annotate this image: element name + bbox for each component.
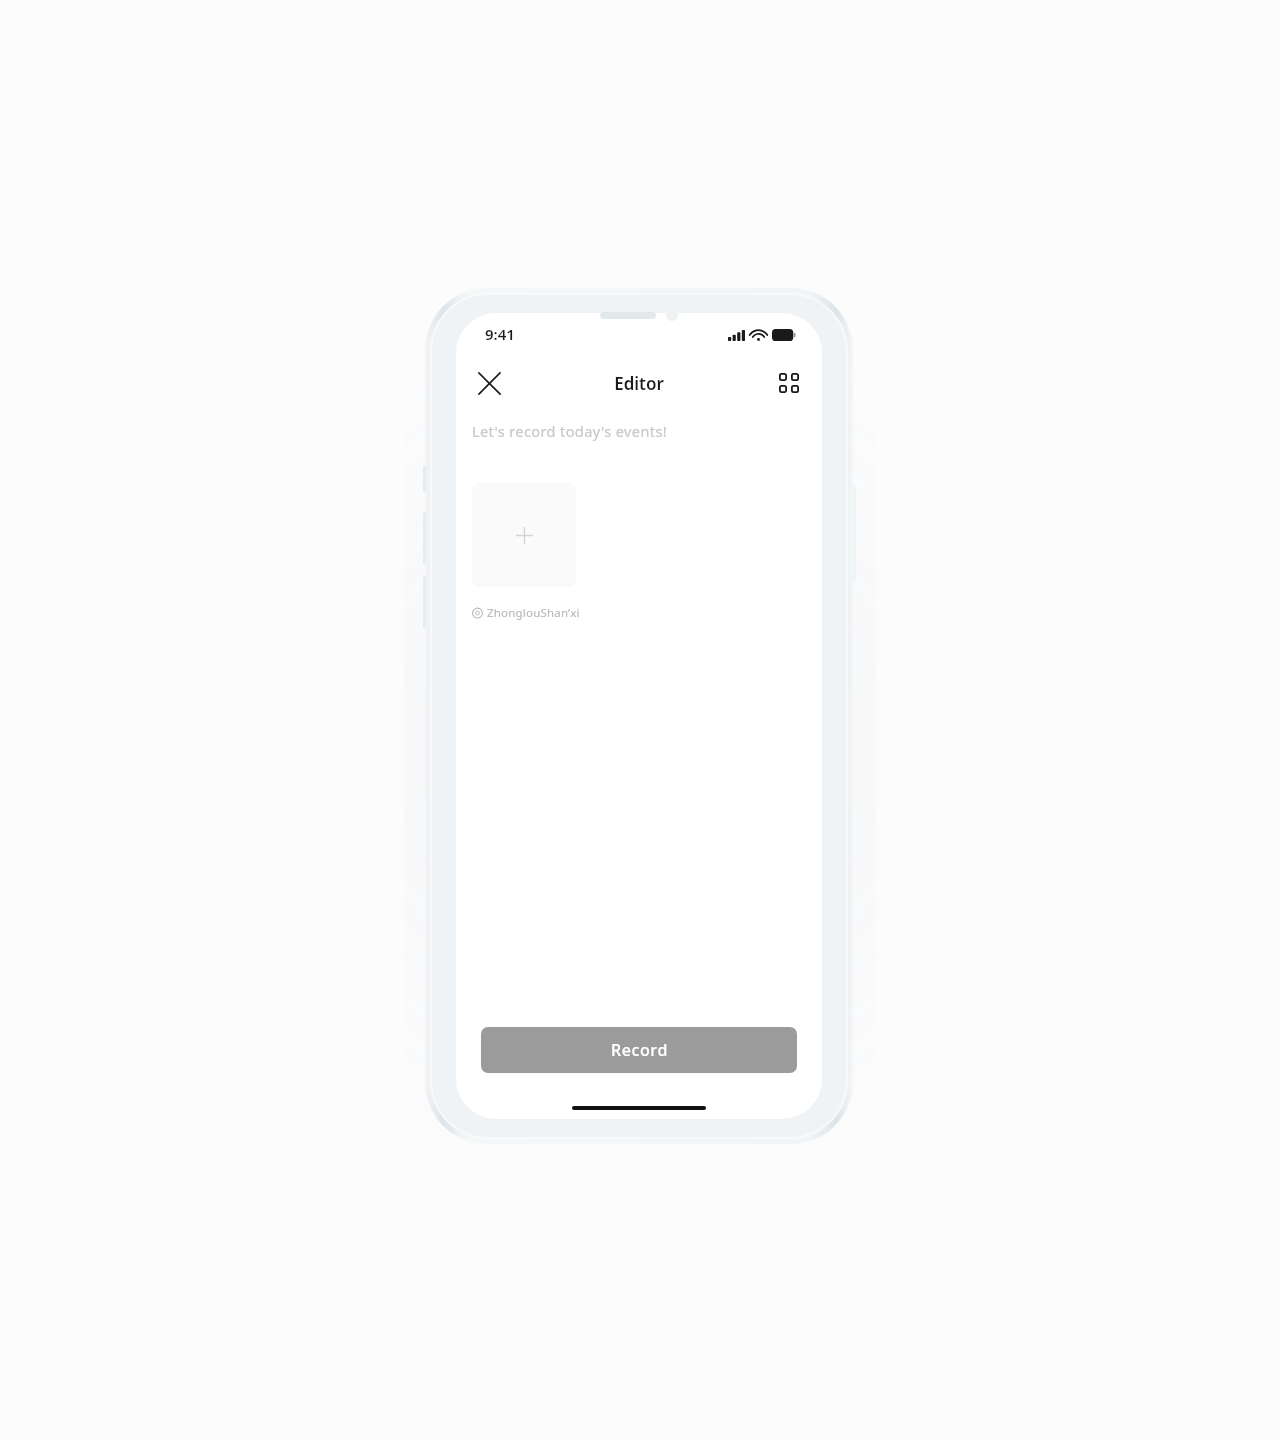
button[interactable]: Record: [481, 1027, 797, 1073]
button[interactable]: Grid view: [767, 361, 811, 405]
button[interactable]: Close: [467, 361, 511, 405]
staticText: Record: [611, 1039, 668, 1061]
button[interactable]: ZhonglouShan’xi: [472, 605, 580, 621]
staticText: 9:41: [485, 324, 515, 344]
staticText: Editor: [614, 372, 664, 395]
staticText: Let's record today's events!: [472, 421, 668, 441]
staticText: ZhonglouShan’xi: [487, 605, 580, 621]
